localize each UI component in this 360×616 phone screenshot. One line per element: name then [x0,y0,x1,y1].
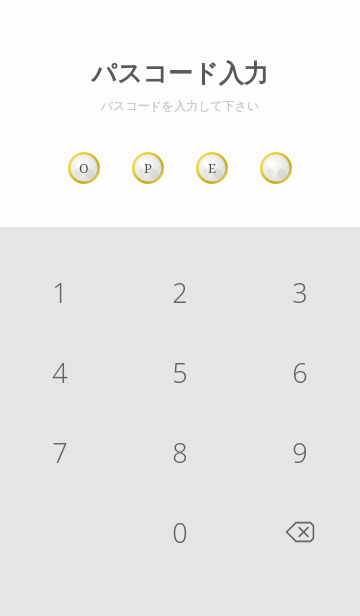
button[interactable]: 0 [120,492,240,572]
staticText: パスコードを入力して下さい [0,98,360,113]
staticText: 4 [52,354,68,391]
button[interactable]: 3 [240,252,360,332]
staticText: E [208,159,217,177]
staticText: P [144,159,152,177]
button[interactable]: 1 [0,252,120,332]
button[interactable]: 8 [120,412,240,492]
button[interactable]: 7 [0,412,120,492]
staticText: 7 [52,434,68,471]
staticText: 1 [52,274,68,311]
staticText: 8 [172,434,188,471]
staticText: 5 [172,354,188,391]
staticText: 9 [292,434,308,471]
button[interactable]: 2 [120,252,240,332]
staticText: 0 [172,514,188,551]
staticText: O [79,159,89,177]
button[interactable]: 4 [0,332,120,412]
button[interactable]: Backspace [240,492,360,572]
staticText: 3 [292,274,308,311]
button[interactable]: 5 [120,332,240,412]
staticText: パスコード入力 [0,58,360,89]
button[interactable]: 6 [240,332,360,412]
button[interactable]: 9 [240,412,360,492]
staticText: 6 [292,354,308,391]
staticText: 2 [172,274,188,311]
